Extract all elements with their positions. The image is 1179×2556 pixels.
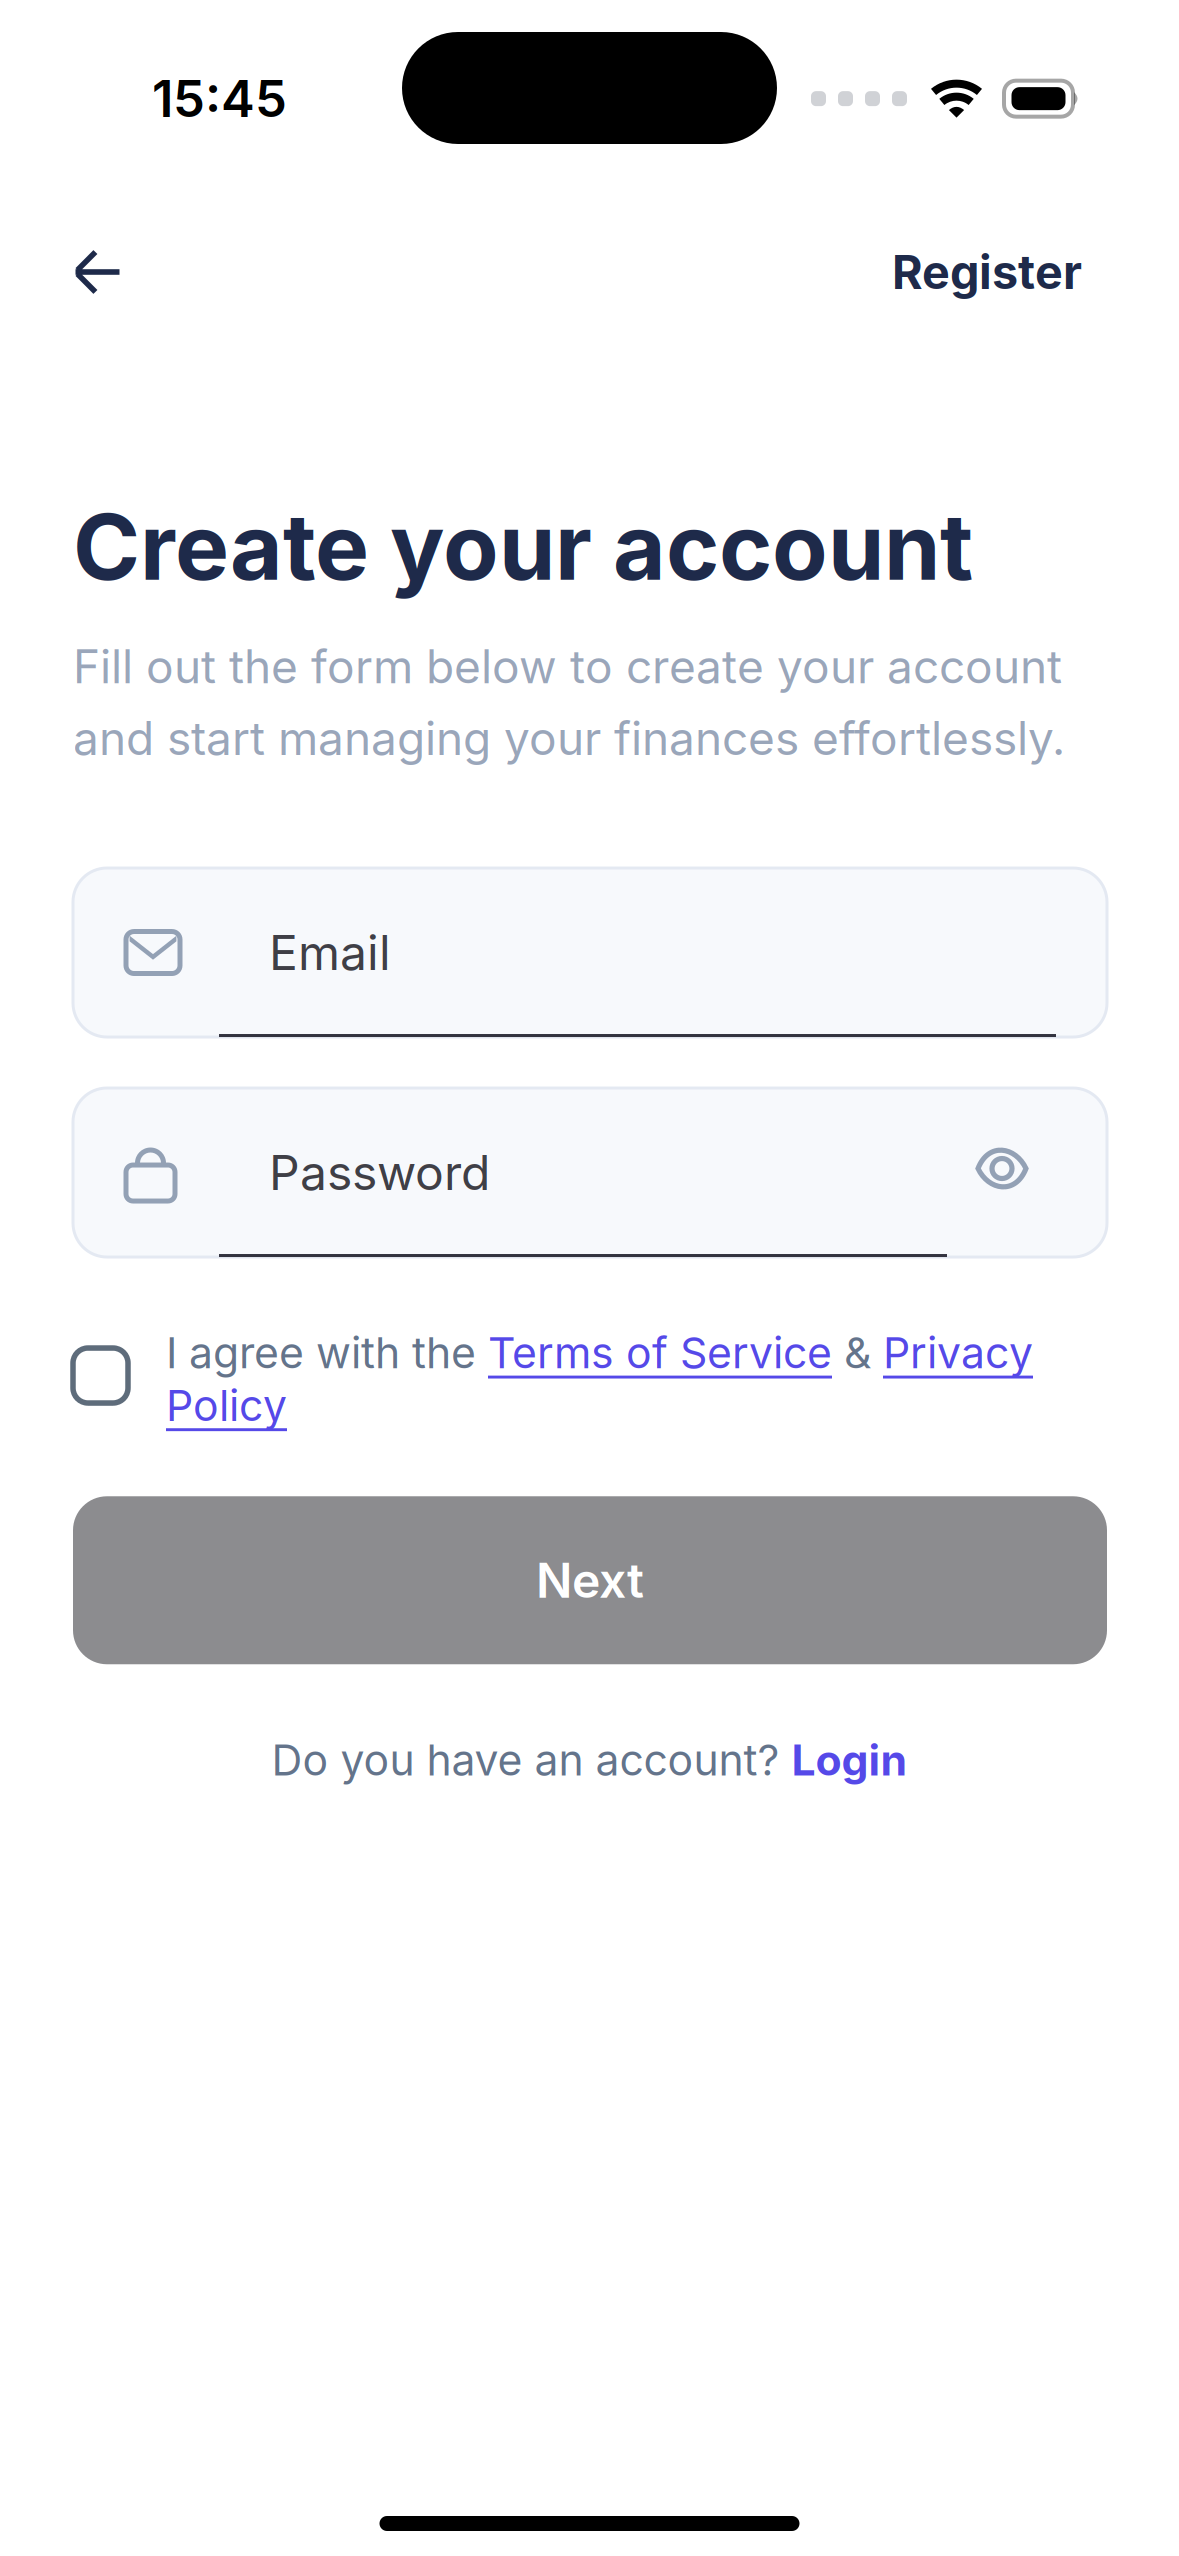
staticText: Next xyxy=(536,1551,644,1609)
button[interactable]: Agree to the terms xyxy=(73,1327,128,1403)
button[interactable]: Back xyxy=(73,224,169,320)
staticText: Email xyxy=(269,923,391,982)
button[interactable]: Next xyxy=(73,1496,1107,1664)
button[interactable]: Register xyxy=(892,224,1082,320)
staticText: Register xyxy=(892,244,1082,300)
staticText: 15:45 xyxy=(152,68,287,129)
staticText: Login xyxy=(791,1734,907,1786)
staticText: Fill out the form below to create your a… xyxy=(73,639,1065,766)
staticText: I agree with the xyxy=(166,1327,488,1379)
staticText: Do you have an account? xyxy=(271,1734,791,1786)
staticText: Password xyxy=(269,1143,490,1202)
staticText: Terms of Service xyxy=(488,1327,832,1379)
staticText: Privacy xyxy=(883,1327,1033,1379)
button[interactable]: Show password xyxy=(949,1112,1107,1232)
button[interactable]: Login xyxy=(791,1734,907,1786)
button[interactable]: Terms of Service xyxy=(488,1327,832,1379)
staticText: & xyxy=(832,1327,883,1379)
staticText: Create your account xyxy=(73,492,973,602)
button[interactable]: Policy xyxy=(166,1380,287,1431)
staticText: Policy xyxy=(166,1380,287,1431)
button[interactable]: Privacy xyxy=(883,1327,1033,1379)
